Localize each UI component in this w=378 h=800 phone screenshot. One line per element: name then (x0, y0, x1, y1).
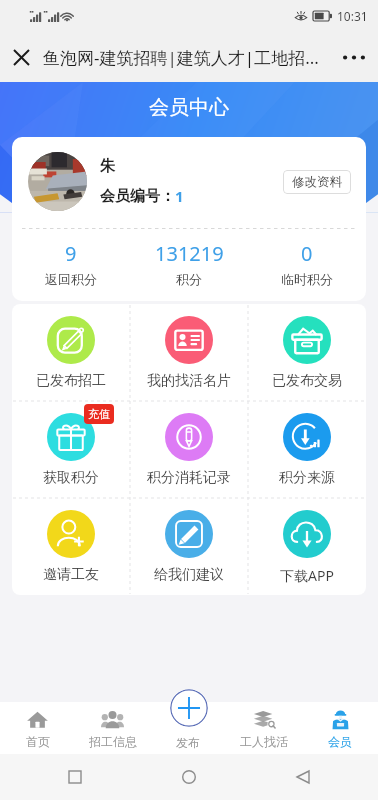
staticText: 已发布招工 (36, 372, 106, 390)
staticText: 积分 (176, 271, 202, 287)
button[interactable]: 0 (248, 240, 366, 287)
staticText: 首页 (26, 734, 50, 749)
button[interactable]: 修改资料 (283, 170, 351, 194)
button[interactable]: 招工信息 (75, 702, 150, 754)
staticText: 朱 (100, 157, 115, 176)
button[interactable]: 给我们建议 (130, 498, 248, 584)
staticText: 返回积分 (45, 271, 97, 287)
button[interactable]: Home (174, 762, 204, 792)
staticText: 已发布交易 (272, 372, 342, 390)
staticText: 工人找活 (240, 734, 288, 749)
staticText: 会员编号： (100, 187, 175, 206)
staticText: 1 (175, 186, 184, 206)
staticText: 会员中心 (0, 95, 378, 120)
button[interactable]: 已发布招工 (12, 304, 130, 390)
staticText: 我的找活名片 (147, 372, 231, 390)
button[interactable]: 131219 (130, 240, 248, 287)
staticText: 会员 (328, 734, 352, 749)
staticText: 9 (65, 240, 77, 267)
staticText: 131219 (155, 240, 224, 267)
button[interactable]: 我的找活名片 (130, 304, 248, 390)
button[interactable]: 发布 (150, 702, 226, 754)
staticText: 获取积分 (43, 469, 99, 487)
button[interactable]: 已发布交易 (248, 304, 366, 390)
staticText: 招工信息 (89, 734, 137, 749)
staticText: 充值 (88, 407, 110, 421)
staticText: 临时积分 (281, 271, 333, 287)
button[interactable]: 积分消耗记录 (130, 401, 248, 487)
staticText: 邀请工友 (43, 566, 99, 584)
button[interactable]: 充值 (12, 401, 130, 487)
staticText: 发布 (176, 735, 200, 750)
button[interactable]: 积分来源 (248, 401, 366, 487)
button[interactable]: More options (339, 42, 369, 72)
button[interactable]: 邀请工友 (12, 498, 130, 584)
button[interactable]: 会员 (302, 702, 378, 754)
button[interactable]: Recents (60, 762, 90, 792)
button[interactable]: Back (288, 762, 318, 792)
staticText: 积分来源 (279, 469, 335, 487)
button[interactable]: Close (6, 42, 36, 72)
staticText: 10:31 (337, 8, 368, 24)
staticText: 0 (301, 240, 313, 267)
button[interactable]: 工人找活 (226, 702, 302, 754)
button[interactable]: 发布 (170, 689, 208, 727)
staticText: 鱼泡网-建筑招聘|建筑人才|工地招... (43, 46, 319, 69)
button[interactable]: 下载APP (248, 498, 366, 585)
staticText: 下载APP (280, 566, 334, 585)
button[interactable]: 首页 (0, 702, 75, 754)
staticText: 修改资料 (292, 174, 342, 190)
staticText: 积分消耗记录 (147, 469, 231, 487)
staticText: 给我们建议 (154, 566, 224, 584)
button[interactable]: 9 (12, 240, 130, 287)
